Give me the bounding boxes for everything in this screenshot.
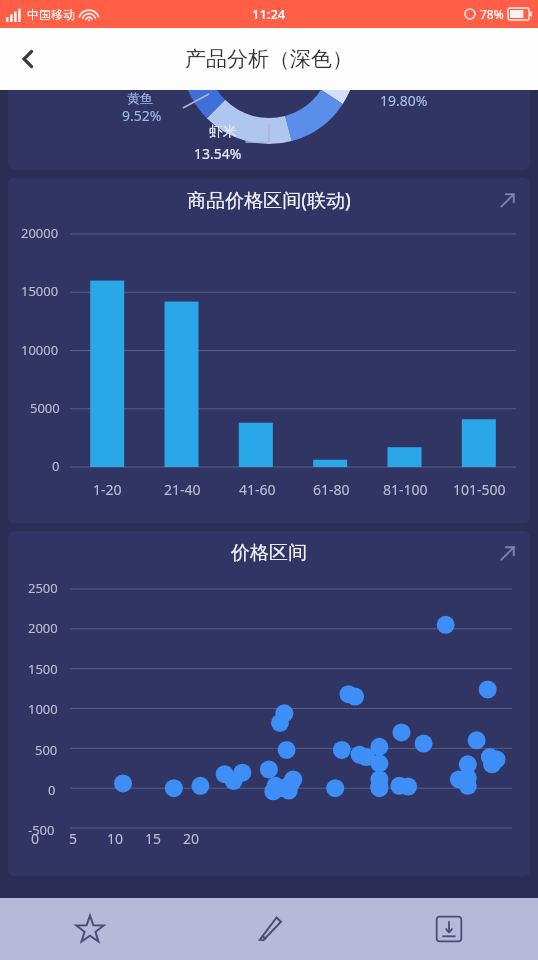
staticText: 产品分析（深色） <box>185 46 353 72</box>
staticText: 15000 <box>21 282 59 300</box>
staticText: 9.52% <box>122 106 162 125</box>
staticText: 价格区间 <box>231 541 307 565</box>
staticText: 10000 <box>21 341 59 359</box>
staticText: 中国移动 <box>27 7 75 22</box>
staticText: 19.80% <box>380 91 428 110</box>
staticText: 101-500 <box>453 480 506 499</box>
staticText: 0 <box>31 829 40 848</box>
staticText: -500 <box>28 821 55 839</box>
staticText: 5000 <box>30 399 60 417</box>
staticText: 15 <box>145 829 162 848</box>
button[interactable]: 价格区间 <box>8 531 530 876</box>
button[interactable]: Expand chart <box>490 183 524 217</box>
staticText: 21-40 <box>164 480 201 499</box>
staticText: 2500 <box>28 579 58 597</box>
staticText: 1500 <box>28 660 58 678</box>
staticText: 2000 <box>28 619 58 637</box>
staticText: 78% <box>480 6 504 22</box>
staticText: 11:24 <box>252 5 286 23</box>
staticText: 500 <box>35 741 58 759</box>
button[interactable]: Download <box>359 898 538 960</box>
staticText: 10 <box>107 829 124 848</box>
staticText: 商品价格区间(联动) <box>187 187 351 213</box>
staticText: 41-60 <box>239 480 276 499</box>
staticText: 0 <box>52 457 60 475</box>
staticText: 1-20 <box>93 480 122 499</box>
staticText: 虾米 <box>209 123 237 141</box>
staticText: 61-80 <box>313 480 350 499</box>
staticText: 13.54% <box>194 144 242 163</box>
staticText: 5 <box>69 829 78 848</box>
button[interactable]: Favorite <box>0 898 180 960</box>
staticText: 1000 <box>28 700 58 718</box>
button[interactable]: Back <box>0 31 56 87</box>
button[interactable]: Edit <box>180 898 359 960</box>
staticText: 20000 <box>21 224 59 242</box>
button[interactable]: 商品价格区间(联动) <box>8 178 530 523</box>
staticText: 黄鱼 <box>127 90 153 106</box>
staticText: 0 <box>48 781 56 799</box>
staticText: 20 <box>183 829 200 848</box>
staticText: 81-100 <box>383 480 428 499</box>
button[interactable]: Expand chart <box>490 536 524 570</box>
button[interactable]: 黄鱼 <box>8 90 530 170</box>
